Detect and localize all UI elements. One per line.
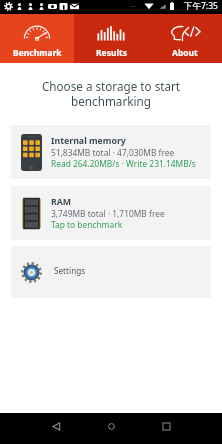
staticText: RAM (51, 196, 72, 208)
staticText: 51,834MB total · 47,030MB free (51, 147, 175, 158)
button[interactable]: RAM (11, 186, 211, 240)
button[interactable]: Results (74, 14, 148, 63)
button[interactable]: Internal memory (11, 125, 211, 179)
staticText: Read 264.20MB/s · Write 231.14MB/s (51, 158, 196, 169)
staticText: Settings (54, 265, 86, 276)
staticText: Tap to benchmark (51, 219, 123, 230)
staticText: About (172, 47, 198, 59)
button[interactable]: Settings (11, 246, 211, 298)
button[interactable]: Recent apps (153, 413, 179, 439)
staticText: 下午7:35 (184, 0, 218, 12)
button[interactable]: Home (98, 413, 124, 439)
staticText: 3,749MB total · 1,710MB free (51, 208, 165, 219)
staticText: Internal memory (51, 135, 126, 147)
staticText: Benchmark (13, 47, 62, 59)
button[interactable]: Benchmark (0, 14, 74, 63)
button[interactable]: About (148, 14, 222, 63)
button[interactable]: Back (43, 413, 69, 439)
staticText: Results (96, 47, 127, 59)
staticText: Choose a storage to start benchmarking (0, 78, 222, 109)
